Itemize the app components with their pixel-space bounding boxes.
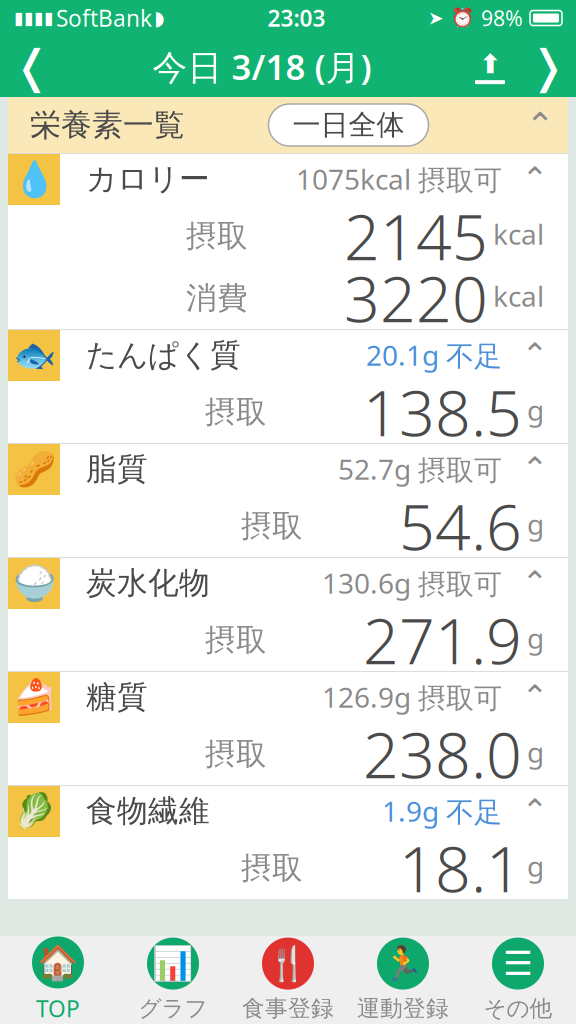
staticText: SoftBank <box>56 3 152 33</box>
staticText: 🍴 <box>267 944 309 983</box>
staticText: 摂取 <box>186 217 248 255</box>
staticText: 摂取 <box>205 735 267 773</box>
button[interactable]: 🥬 <box>8 785 568 837</box>
staticText: 🍚 <box>12 563 55 603</box>
staticText: 今日 3/18 (月) <box>152 43 371 89</box>
staticText: 18.1 <box>399 826 522 910</box>
staticText: 54.6 <box>399 484 522 568</box>
staticText: 運動登録 <box>357 995 449 1022</box>
button[interactable]: 共有 <box>460 36 520 96</box>
staticText: ➤ <box>428 7 444 29</box>
button[interactable]: ☰ <box>460 937 575 1023</box>
staticText: 糖質 <box>86 678 148 716</box>
button[interactable]: 🐟 <box>8 329 568 381</box>
staticText: ❭ <box>529 41 567 92</box>
staticText: その他 <box>483 995 552 1022</box>
staticText: 🏃 <box>382 944 424 983</box>
button[interactable]: 🏃 <box>345 937 460 1023</box>
staticText: たんぱく質 <box>86 336 241 374</box>
staticText: ☰ <box>503 945 533 982</box>
staticText: 20.1g 不足 <box>366 336 502 374</box>
staticText: ⌃ <box>521 451 548 487</box>
staticText: 摂取 <box>205 393 267 431</box>
staticText: 🏠 <box>37 943 79 981</box>
staticText: 52.7g 摂取可 <box>338 450 502 488</box>
staticText: ▮▮▮▮ <box>14 8 54 28</box>
staticText: ⌃ <box>521 679 548 715</box>
staticText: 炭水化物 <box>86 564 210 602</box>
staticText: 138.5 <box>363 370 522 454</box>
staticText: 2145 <box>344 194 488 278</box>
staticText: 栄養素一覧 <box>30 106 185 144</box>
staticText: 🐟 <box>12 335 55 375</box>
button[interactable]: 🍴 <box>230 937 345 1023</box>
staticText: 一日全体 <box>292 108 404 142</box>
staticText: ⬆ <box>479 49 501 79</box>
staticText: 23:03 <box>267 3 325 33</box>
button[interactable]: 🍰 <box>8 671 568 723</box>
staticText: 食物繊維 <box>86 792 210 830</box>
staticText: 摂取 <box>241 849 303 887</box>
staticText: 238.0 <box>363 712 522 796</box>
button[interactable]: 📊 <box>115 937 230 1023</box>
staticText: ⌃ <box>521 161 548 197</box>
staticText: 🥜 <box>12 449 55 489</box>
button[interactable]: 🥜 <box>8 443 568 495</box>
staticText: ◗ <box>154 7 165 29</box>
staticText: 食事登録 <box>242 995 334 1022</box>
staticText: ❬ <box>13 41 51 92</box>
staticText: g <box>527 847 544 885</box>
button[interactable]: 次の日 <box>520 36 576 96</box>
staticText: g <box>527 391 544 429</box>
staticText: 消費 <box>186 279 248 317</box>
staticText: ⌃ <box>521 337 548 373</box>
staticText: 🍰 <box>12 677 55 717</box>
staticText: kcal <box>493 215 544 253</box>
staticText: ⏰ <box>451 7 474 29</box>
staticText: 🥬 <box>12 791 55 831</box>
staticText: ⌃ <box>521 793 548 829</box>
staticText: 3220 <box>344 256 488 340</box>
staticText: 📊 <box>152 944 194 983</box>
staticText: 摂取 <box>241 507 303 545</box>
button[interactable]: 折りたたむ <box>512 101 568 149</box>
staticText: kcal <box>493 277 544 315</box>
staticText: 130.6g 摂取可 <box>322 564 502 602</box>
staticText: 1.9g 不足 <box>382 792 502 830</box>
button[interactable]: 💧 <box>8 153 568 205</box>
staticText: 98% <box>481 4 523 32</box>
staticText: g <box>527 505 544 543</box>
staticText: 💧 <box>12 159 55 199</box>
staticText: 摂取 <box>205 621 267 659</box>
staticText: 126.9g 摂取可 <box>322 678 502 716</box>
staticText: TOP <box>36 993 80 1023</box>
button[interactable]: 前の日 <box>0 36 64 96</box>
staticText: ⌃ <box>521 565 548 601</box>
button[interactable]: 🍚 <box>8 557 568 609</box>
staticText: 271.9 <box>363 598 522 682</box>
staticText: ⌃ <box>525 105 554 145</box>
button[interactable]: 一日全体 <box>268 104 428 146</box>
button[interactable]: 🏠 <box>0 937 115 1023</box>
staticText: 1075kcal 摂取可 <box>296 160 502 198</box>
staticText: g <box>527 619 544 657</box>
staticText: 脂質 <box>86 450 148 488</box>
staticText: g <box>527 733 544 771</box>
staticText: カロリー <box>86 160 210 198</box>
staticText: グラフ <box>138 995 207 1022</box>
